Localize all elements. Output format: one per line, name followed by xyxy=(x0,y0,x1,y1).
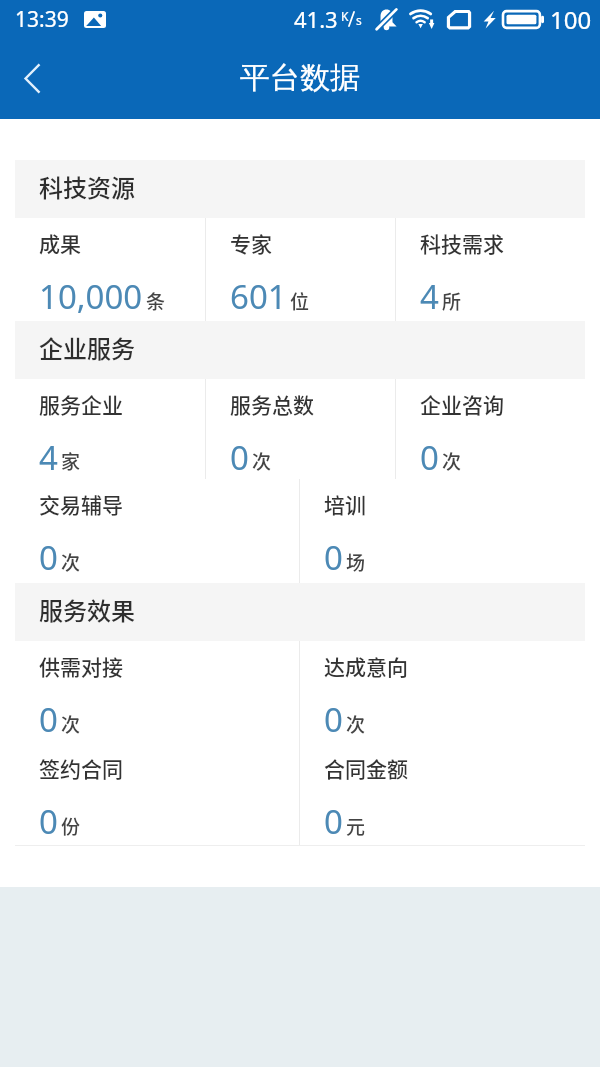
staticText: 次 xyxy=(61,710,81,738)
staticText: 供需对接 xyxy=(39,651,123,681)
staticText: 601 xyxy=(230,274,287,319)
staticText: 条 xyxy=(146,287,166,315)
staticText: 培训 xyxy=(324,489,366,519)
button[interactable]: Back xyxy=(0,38,62,119)
staticText: 所 xyxy=(442,287,462,315)
button[interactable]: 科技需求 xyxy=(396,218,585,321)
staticText: 0 xyxy=(230,435,249,479)
staticText: 家 xyxy=(61,447,81,475)
button[interactable]: 合同金额 xyxy=(300,743,585,845)
staticText: 达成意向 xyxy=(324,651,408,681)
staticText: 合同金额 xyxy=(324,753,408,783)
staticText: 服务企业 xyxy=(39,389,123,419)
staticText: 0 xyxy=(324,697,343,742)
staticText: 0 xyxy=(420,435,439,479)
button[interactable]: 服务企业 xyxy=(15,379,205,479)
staticText: 0 xyxy=(39,697,58,742)
staticText: 平台数据 xyxy=(240,59,360,97)
staticText: K xyxy=(341,8,349,24)
staticText: 4 xyxy=(420,274,439,319)
button[interactable]: 成果 xyxy=(15,218,205,321)
staticText: 位 xyxy=(290,287,310,315)
button[interactable]: 专家 xyxy=(206,218,395,321)
staticText: 企业咨询 xyxy=(420,389,504,419)
staticText: 0 xyxy=(39,535,58,580)
button[interactable]: 培训 xyxy=(300,479,585,583)
staticText: 专家 xyxy=(230,228,272,258)
staticText: 服务总数 xyxy=(230,389,314,419)
staticText: 元 xyxy=(346,812,366,840)
staticText: 科技需求 xyxy=(420,228,504,258)
staticText: 科技资源 xyxy=(39,169,135,204)
staticText: 4 xyxy=(39,435,58,479)
staticText: 企业服务 xyxy=(39,330,135,365)
staticText: 0 xyxy=(39,799,58,844)
button[interactable]: 供需对接 xyxy=(15,641,299,743)
staticText: 次 xyxy=(252,447,272,475)
staticText: 服务效果 xyxy=(39,592,135,627)
staticText: 交易辅导 xyxy=(39,489,123,519)
staticText: 次 xyxy=(61,548,81,576)
staticText: s xyxy=(356,12,362,28)
staticText: 41.3 xyxy=(294,4,338,34)
staticText: 场 xyxy=(346,548,366,576)
button[interactable]: 交易辅导 xyxy=(15,479,299,583)
staticText: 100 xyxy=(550,3,592,36)
button[interactable]: 企业咨询 xyxy=(396,379,585,479)
staticText: 签约合同 xyxy=(39,753,123,783)
staticText: 0 xyxy=(324,799,343,844)
button[interactable]: 签约合同 xyxy=(15,743,299,845)
staticText: 成果 xyxy=(39,228,81,258)
staticText: 0 xyxy=(324,535,343,580)
staticText: 13:39 xyxy=(15,5,69,34)
button[interactable]: 达成意向 xyxy=(300,641,585,743)
staticText: 10,000 xyxy=(39,274,143,319)
staticText: 次 xyxy=(442,447,462,475)
button[interactable]: 服务总数 xyxy=(206,379,395,479)
staticText: 份 xyxy=(61,812,81,840)
staticText: 次 xyxy=(346,710,366,738)
